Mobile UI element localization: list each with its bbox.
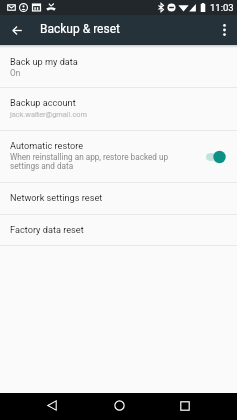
staticText: Factory data reset xyxy=(10,224,84,235)
staticText: Backup account xyxy=(10,97,76,108)
button[interactable]: More options xyxy=(211,15,237,45)
staticText: When reinstalling an app, restore backed… xyxy=(10,152,172,171)
button[interactable]: Recent apps xyxy=(170,393,200,420)
button[interactable]: Network settings reset xyxy=(0,183,237,214)
staticText: Network settings reset xyxy=(10,192,103,203)
button[interactable]: Navigate up xyxy=(4,15,30,45)
button[interactable]: Automatic restore xyxy=(203,147,231,167)
staticText: 11:03 xyxy=(210,2,234,13)
staticText: On xyxy=(10,68,21,78)
button[interactable]: Home xyxy=(104,393,134,420)
button[interactable]: Back up my data xyxy=(0,48,237,87)
staticText: Backup & reset xyxy=(40,22,120,36)
button[interactable]: Back xyxy=(37,393,67,420)
staticText: Back up my data xyxy=(10,56,78,67)
staticText: jack.walter@gmail.com xyxy=(10,110,87,119)
button[interactable]: Automatic restore xyxy=(0,131,237,182)
staticText: Automatic restore xyxy=(10,140,84,151)
button[interactable]: Backup account xyxy=(0,88,237,130)
button[interactable]: Factory data reset xyxy=(0,215,237,245)
